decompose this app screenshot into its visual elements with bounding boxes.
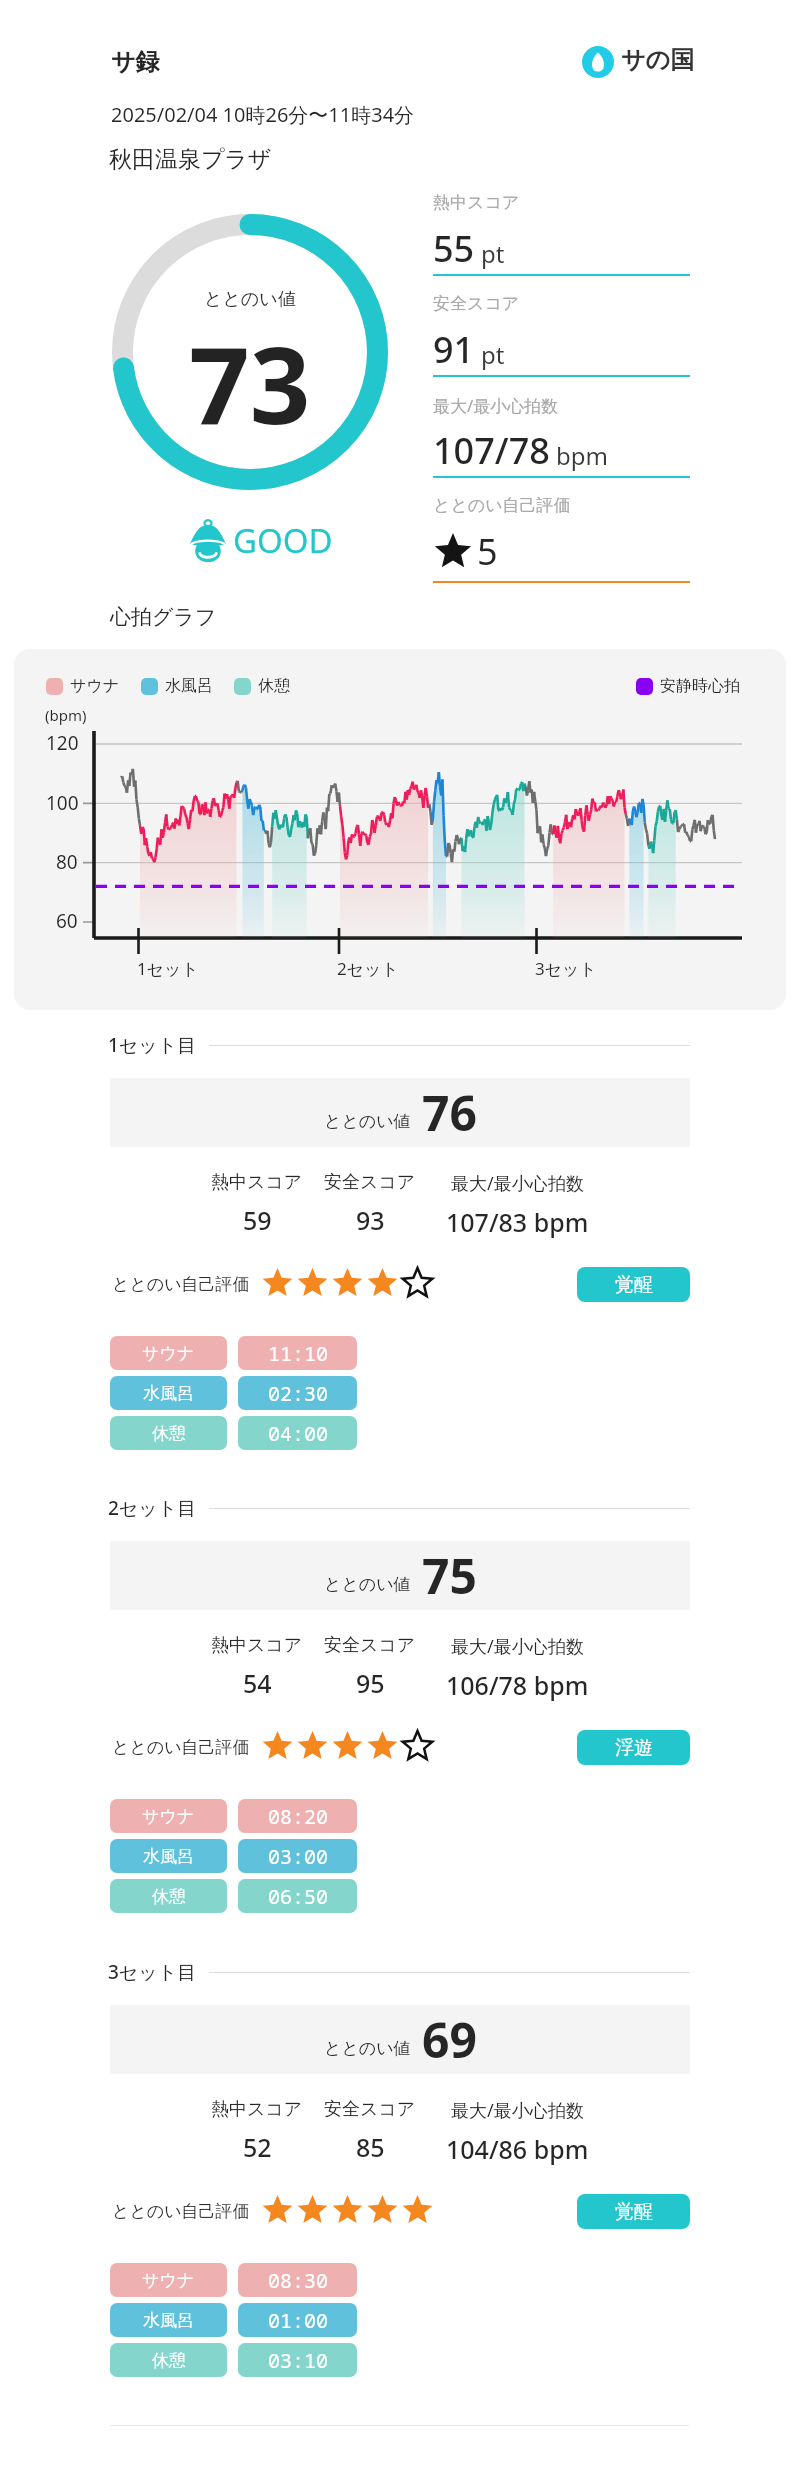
- staticText: 2セット: [337, 957, 399, 980]
- button[interactable]: 覚醒: [577, 2194, 690, 2229]
- other: サの国 logo: [582, 46, 614, 78]
- staticText: ととのい自己評価: [112, 1737, 250, 1758]
- staticText: 106/78 bpm: [446, 1668, 589, 1702]
- staticText: 水風呂: [143, 2310, 194, 2331]
- staticText: pt: [481, 237, 505, 270]
- staticText: 107/83 bpm: [446, 1205, 589, 1239]
- staticText: 休憩: [152, 1886, 186, 1907]
- staticText: 52: [243, 2130, 272, 2164]
- staticText: 覚醒: [615, 2200, 653, 2224]
- staticText: 最大/最小心拍数: [433, 394, 559, 417]
- staticText: 休憩: [258, 676, 290, 696]
- staticText: 55: [433, 224, 475, 273]
- button[interactable]: 11:10: [238, 1336, 357, 1370]
- button[interactable]: サウナ: [110, 1799, 227, 1833]
- staticText: 秋田温泉プラザ: [109, 145, 272, 174]
- staticText: 5: [477, 527, 498, 576]
- staticText: 06:50: [268, 1883, 328, 1910]
- button[interactable]: 02:30: [238, 1376, 357, 1410]
- button[interactable]: 休憩: [110, 2343, 227, 2377]
- staticText: 93: [356, 1203, 385, 1237]
- staticText: 2025/02/04 10時26分〜11時34分: [111, 101, 415, 128]
- staticText: 最大/最小心拍数: [451, 2098, 584, 2123]
- staticText: 2セット目: [108, 1495, 197, 1521]
- staticText: 最大/最小心拍数: [451, 1171, 584, 1196]
- button[interactable]: 水風呂: [110, 1839, 227, 1873]
- staticText: 76: [422, 1080, 477, 1145]
- staticText: 熱中スコア: [211, 1171, 303, 1194]
- button[interactable]: ととのい値: [110, 1541, 690, 1610]
- staticText: ととのい値: [324, 2038, 411, 2059]
- staticText: 120: [46, 730, 79, 756]
- staticText: 3セット: [535, 957, 597, 980]
- button[interactable]: 浮遊: [577, 1730, 690, 1765]
- staticText: 1セット目: [108, 1032, 197, 1058]
- button[interactable]: 水風呂: [110, 2303, 227, 2337]
- button[interactable]: 水風呂: [110, 1376, 227, 1410]
- button[interactable]: 08:30: [238, 2263, 357, 2297]
- staticText: サウナ: [142, 1806, 195, 1827]
- staticText: 08:30: [268, 2267, 328, 2294]
- button[interactable]: 03:00: [238, 1839, 357, 1873]
- staticText: 最大/最小心拍数: [451, 1634, 584, 1659]
- staticText: 11:10: [268, 1340, 328, 1367]
- button[interactable]: 06:50: [238, 1879, 357, 1913]
- staticText: 休憩: [152, 2350, 186, 2371]
- staticText: 水風呂: [143, 1383, 194, 1404]
- staticText: 安全スコア: [324, 1171, 416, 1194]
- staticText: 安静時心拍: [660, 676, 740, 696]
- staticText: 95: [356, 1666, 385, 1700]
- staticText: 休憩: [152, 1423, 186, 1444]
- staticText: 3セット目: [108, 1959, 197, 1985]
- staticText: 91: [433, 325, 475, 374]
- staticText: 安全スコア: [433, 293, 520, 314]
- staticText: 59: [243, 1203, 272, 1237]
- staticText: 熱中スコア: [211, 1634, 303, 1657]
- staticText: サウナ: [70, 676, 120, 696]
- button[interactable]: ととのい値: [110, 2005, 690, 2074]
- button[interactable]: 覚醒: [577, 1267, 690, 1302]
- staticText: 73: [189, 311, 311, 455]
- staticText: 54: [243, 1666, 272, 1700]
- staticText: 浮遊: [615, 1736, 653, 1760]
- staticText: 03:00: [268, 1843, 328, 1870]
- staticText: 03:10: [268, 2347, 328, 2374]
- staticText: (bpm): [45, 705, 87, 725]
- staticText: 安全スコア: [324, 1634, 416, 1657]
- button[interactable]: 03:10: [238, 2343, 357, 2377]
- staticText: 60: [56, 908, 78, 934]
- staticText: 85: [356, 2130, 385, 2164]
- staticText: 覚醒: [615, 1273, 653, 1297]
- staticText: 心拍グラフ: [110, 604, 217, 630]
- staticText: ととのい値: [324, 1574, 411, 1595]
- staticText: 安全スコア: [324, 2098, 416, 2121]
- staticText: サ録: [111, 47, 160, 77]
- button[interactable]: 01:00: [238, 2303, 357, 2337]
- staticText: GOOD: [233, 518, 333, 563]
- staticText: 水風呂: [165, 676, 213, 696]
- staticText: ととのい自己評価: [112, 1274, 250, 1295]
- staticText: 04:00: [268, 1420, 328, 1447]
- button[interactable]: 08:20: [238, 1799, 357, 1833]
- button[interactable]: サウナ: [110, 1336, 227, 1370]
- staticText: 100: [46, 790, 79, 816]
- staticText: 熱中スコア: [433, 192, 520, 213]
- staticText: pt: [481, 338, 505, 371]
- button[interactable]: 休憩: [110, 1416, 227, 1450]
- button[interactable]: ととのい値: [110, 1078, 690, 1147]
- staticText: 104/86 bpm: [446, 2132, 589, 2166]
- staticText: 80: [56, 849, 78, 875]
- staticText: ととのい自己評価: [112, 2201, 250, 2222]
- staticText: サの国: [621, 45, 695, 75]
- staticText: 08:20: [268, 1803, 328, 1830]
- staticText: ととのい値: [204, 288, 296, 311]
- button[interactable]: サウナ: [110, 2263, 227, 2297]
- button[interactable]: 休憩: [110, 1879, 227, 1913]
- staticText: 75: [422, 1543, 477, 1608]
- staticText: 69: [422, 2007, 477, 2072]
- staticText: ととのい自己評価: [433, 495, 571, 516]
- staticText: 水風呂: [143, 1846, 194, 1867]
- button[interactable]: 04:00: [238, 1416, 357, 1450]
- staticText: 02:30: [268, 1380, 328, 1407]
- staticText: 熱中スコア: [211, 2098, 303, 2121]
